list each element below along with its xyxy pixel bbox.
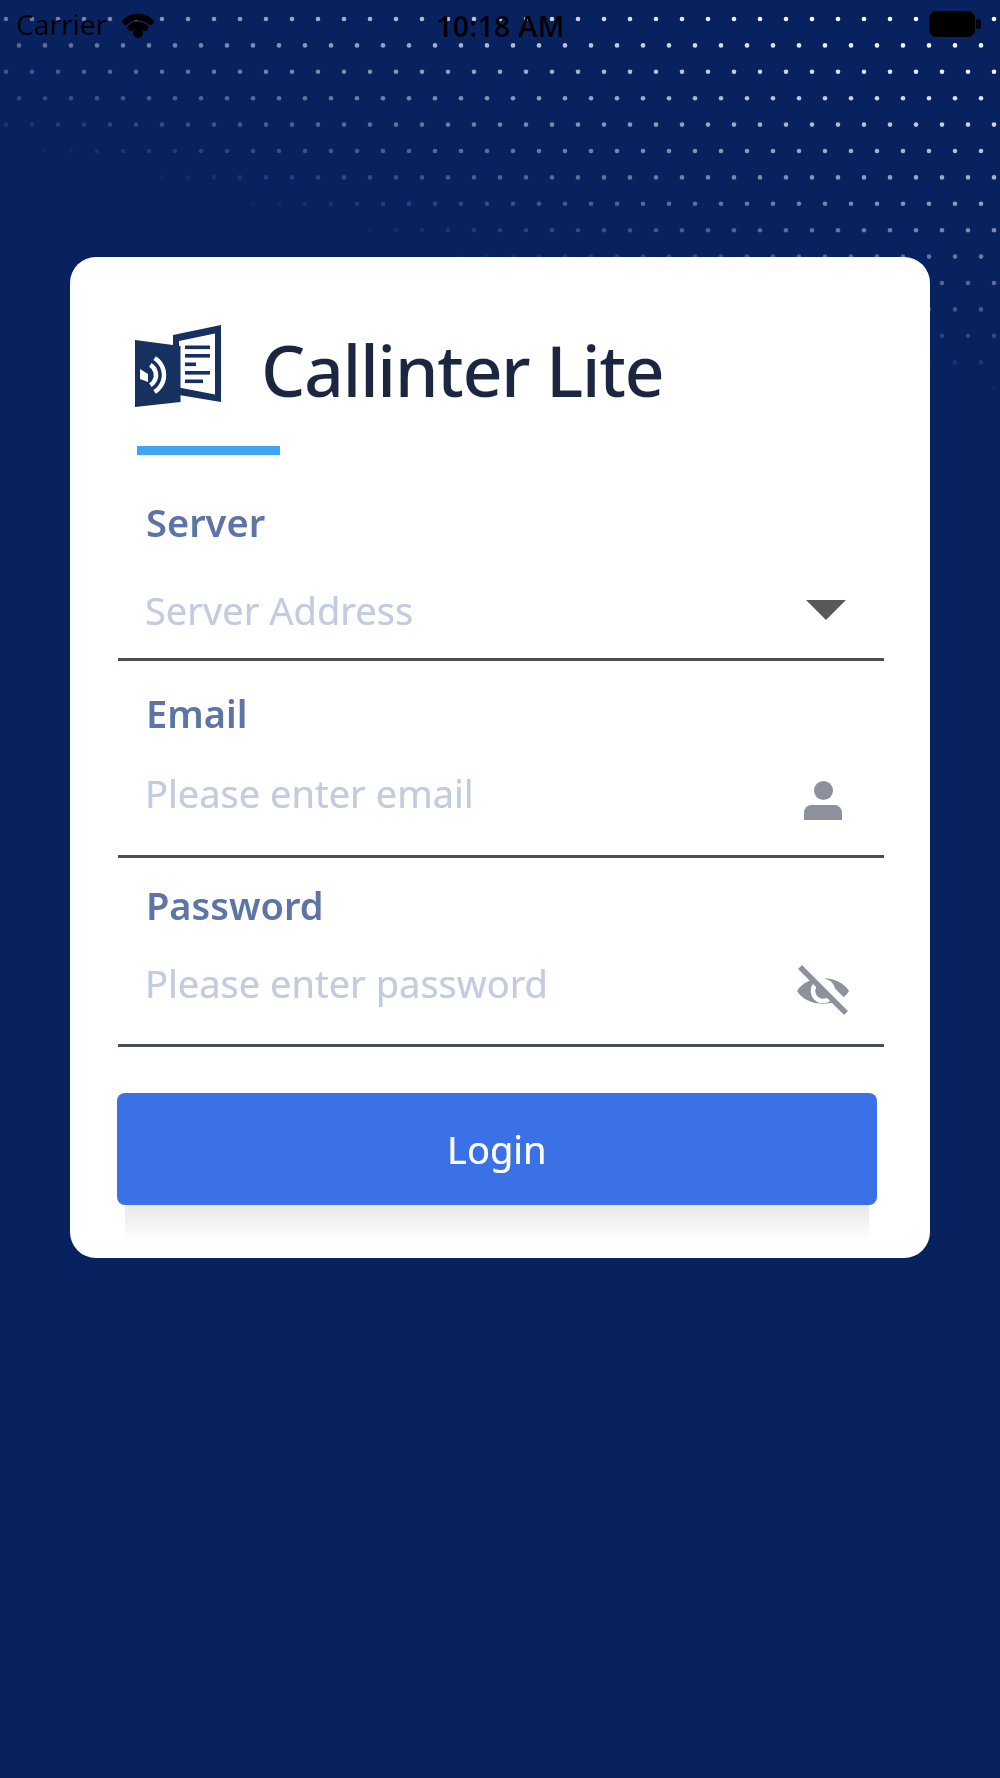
- staticText: Please enter email: [145, 767, 474, 819]
- staticText: Please enter password: [145, 957, 548, 1009]
- button[interactable]: Server Address: [145, 584, 765, 636]
- staticText: 10:18 AM: [436, 6, 565, 45]
- button[interactable]: Please enter password: [145, 957, 765, 1009]
- staticText: Email: [146, 687, 248, 739]
- staticText: Carrier: [16, 5, 108, 43]
- staticText: Password: [146, 879, 324, 931]
- button[interactable]: Login: [117, 1093, 877, 1205]
- staticText: Callinter Lite: [261, 322, 664, 417]
- staticText: Server: [146, 496, 266, 548]
- button[interactable]: Please enter email: [145, 767, 765, 819]
- staticText: Login: [447, 1123, 547, 1175]
- staticText: Server Address: [145, 584, 414, 636]
